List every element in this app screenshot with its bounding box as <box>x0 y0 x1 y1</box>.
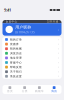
staticText: 关于我们 <box>10 70 22 73</box>
staticText: 9:41 <box>4 7 11 13</box>
staticText: 系统设置 <box>10 75 22 78</box>
staticText: 首页 <box>7 89 13 93</box>
staticText: 会员中心 <box>5 20 17 23</box>
staticText: 我的收藏 <box>10 47 22 50</box>
staticText: › <box>58 51 59 55</box>
staticText: 浏览历史 <box>10 52 22 55</box>
staticText: › <box>58 42 59 46</box>
staticText: 用户昵称 <box>15 25 31 30</box>
button[interactable]: 地址管理 <box>2 56 61 60</box>
staticText: › <box>58 38 59 41</box>
staticText: 分类 <box>22 89 28 93</box>
staticText: 地址管理 <box>10 56 22 60</box>
staticText: 优惠券 <box>10 42 19 46</box>
staticText: › <box>58 74 59 78</box>
button[interactable]: 我的 <box>47 85 62 94</box>
button[interactable]: 关于我们 <box>2 69 61 74</box>
staticText: › <box>58 56 59 60</box>
button[interactable]: 购物车 <box>32 85 47 94</box>
staticText: 客服中心 <box>10 61 22 64</box>
button[interactable]: 分类 <box>17 85 32 94</box>
staticText: › <box>58 47 59 50</box>
staticText: 帮助反馈 <box>10 65 22 69</box>
button[interactable]: 系统设置 <box>2 74 61 79</box>
staticText: › <box>58 61 59 64</box>
button[interactable]: 帮助反馈 <box>2 65 61 69</box>
staticText: 我的订单 <box>10 38 22 41</box>
button[interactable]: 优惠券 <box>2 42 61 46</box>
staticText: › <box>58 70 59 73</box>
staticText: 我的 <box>51 89 57 93</box>
button[interactable]: 我的收藏 <box>2 46 61 51</box>
button[interactable]: 会员中心 <box>2 20 61 36</box>
staticText: 购物车 <box>35 89 44 93</box>
staticText: › <box>58 65 59 69</box>
staticText: ID 88426135 <box>15 30 35 34</box>
button[interactable]: 客服中心 <box>2 60 61 65</box>
button[interactable]: 浏览历史 <box>2 51 61 56</box>
button[interactable]: 首页 <box>2 85 17 94</box>
staticText: 立即开通 <box>46 20 58 23</box>
button[interactable]: 我的订单 <box>2 37 61 42</box>
